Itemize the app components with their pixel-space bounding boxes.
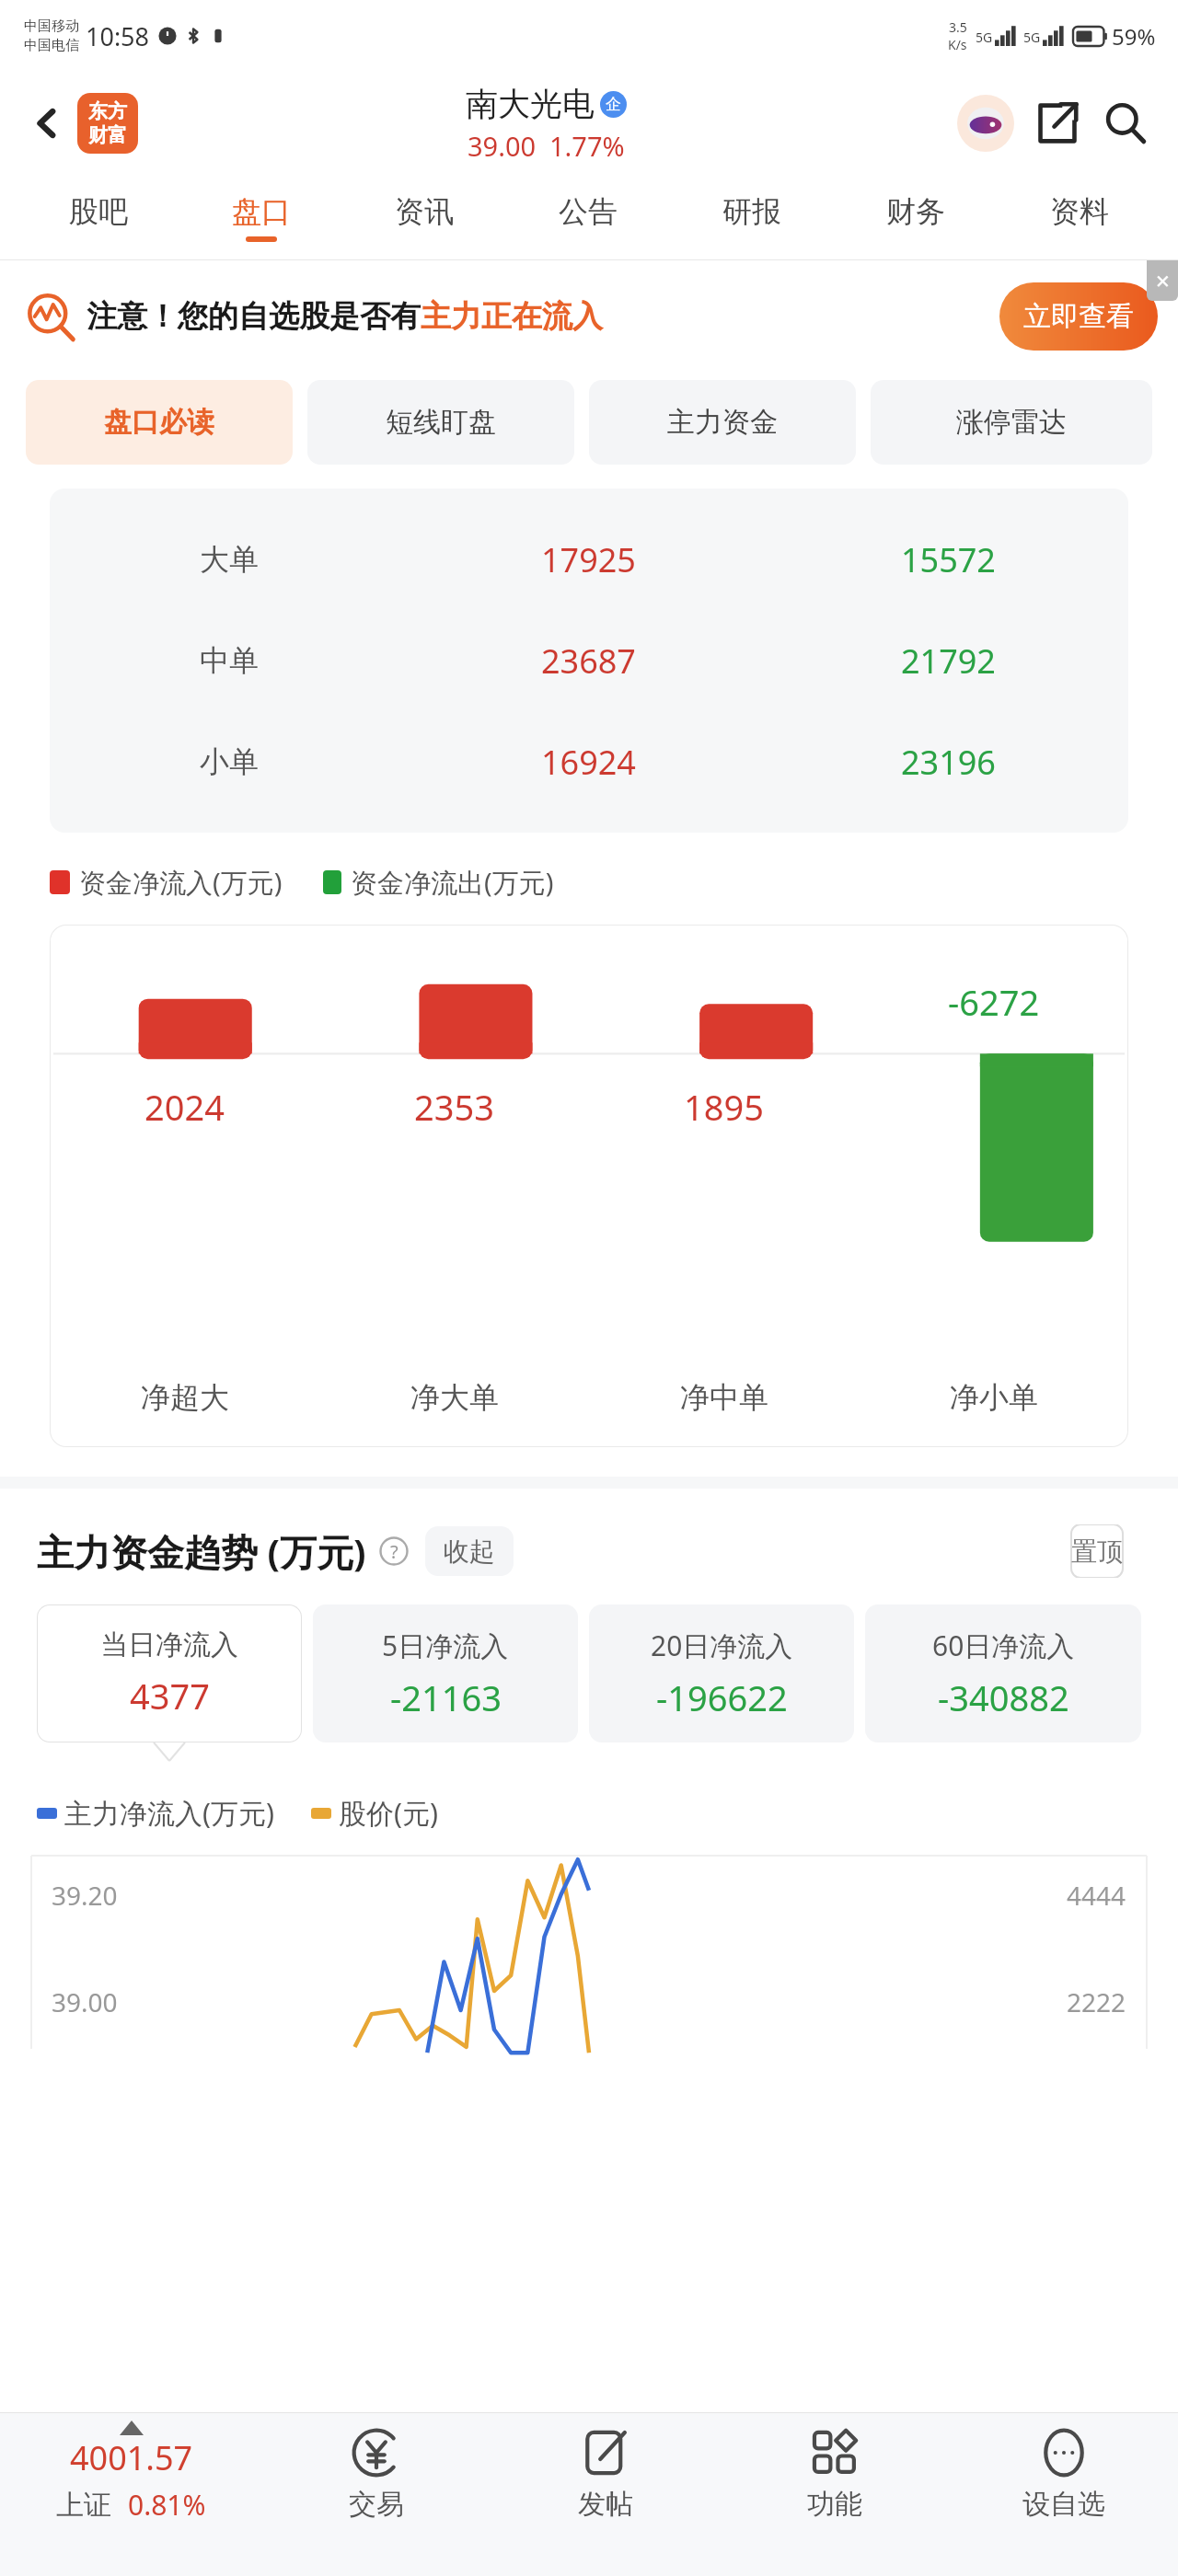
staticText: 资金净流入(万元) bbox=[79, 864, 283, 901]
button[interactable]: 东方财富 bbox=[77, 93, 138, 154]
staticText: 盘口必读 bbox=[104, 405, 214, 440]
staticText: 资金净流出(万元) bbox=[351, 864, 554, 901]
staticText: 20日净流入 bbox=[651, 1627, 793, 1664]
button[interactable]: 盘口必读 bbox=[26, 380, 293, 465]
button[interactable]: Back bbox=[24, 100, 70, 146]
staticText: 60日净流入 bbox=[932, 1627, 1075, 1664]
button[interactable]: 公告 bbox=[506, 175, 670, 259]
staticText: 置顶 bbox=[1071, 1535, 1123, 1568]
staticText: 大单 bbox=[200, 541, 259, 578]
staticText: 南大光电 bbox=[466, 84, 595, 124]
staticText: 2353 bbox=[414, 1083, 494, 1131]
staticText: K/s bbox=[948, 36, 967, 53]
staticText: 资料 bbox=[1050, 193, 1109, 230]
staticText: 股价(元) bbox=[339, 1794, 438, 1832]
staticText: -6272 bbox=[948, 978, 1040, 1026]
staticText: 资讯 bbox=[395, 193, 454, 230]
staticText: ? bbox=[390, 1539, 398, 1564]
button[interactable]: 研报 bbox=[670, 175, 834, 259]
button[interactable]: Close bbox=[1147, 260, 1178, 301]
button[interactable]: 发帖 bbox=[491, 2413, 720, 2576]
staticText: 净大单 bbox=[410, 1379, 499, 1416]
staticText: 39.00 bbox=[468, 128, 537, 164]
staticText: 1895 bbox=[684, 1083, 764, 1131]
staticText: 上证 bbox=[56, 2488, 111, 2523]
staticText: 立即查看 bbox=[1023, 299, 1134, 334]
button[interactable]: 置顶 bbox=[1053, 1524, 1141, 1578]
staticText: 5G bbox=[976, 29, 993, 46]
staticText: 企 bbox=[606, 95, 621, 114]
staticText: 短线盯盘 bbox=[386, 405, 496, 440]
staticText: -21163 bbox=[390, 1673, 502, 1721]
staticText: 涨停雷达 bbox=[956, 405, 1067, 440]
staticText: 主力正在流入 bbox=[421, 297, 603, 336]
staticText: 主力净流入(万元) bbox=[64, 1794, 274, 1832]
staticText: 10:58 bbox=[86, 19, 150, 53]
staticText: 1.77% bbox=[549, 128, 625, 164]
staticText: -340882 bbox=[938, 1673, 1069, 1721]
staticText: 净中单 bbox=[680, 1379, 768, 1416]
button[interactable]: 注意！您的自选股是否有 bbox=[26, 260, 1158, 373]
staticText: 21792 bbox=[901, 638, 996, 684]
staticText: 发帖 bbox=[578, 2487, 633, 2522]
button[interactable]: 立即查看 bbox=[999, 282, 1158, 351]
staticText: 3.5 bbox=[949, 18, 967, 36]
button[interactable]: 交易 bbox=[262, 2413, 491, 2576]
button[interactable]: Help bbox=[377, 1535, 410, 1568]
staticText: 小单 bbox=[200, 743, 259, 780]
staticText: 5G bbox=[1023, 29, 1041, 46]
staticText: 财务 bbox=[886, 193, 945, 230]
staticText: 2024 bbox=[144, 1083, 225, 1131]
button[interactable]: 4001.57 bbox=[0, 2413, 262, 2576]
button[interactable]: 主力资金 bbox=[589, 380, 856, 465]
staticText: 39.00 bbox=[52, 1984, 118, 2019]
staticText: 23687 bbox=[541, 638, 636, 684]
button[interactable]: 财务 bbox=[834, 175, 998, 259]
staticText: 主力资金趋势 (万元) bbox=[37, 1526, 366, 1577]
button[interactable]: Share bbox=[1029, 95, 1086, 152]
staticText: 东方 bbox=[88, 99, 127, 123]
staticText: 交易 bbox=[349, 2487, 404, 2522]
staticText: 23196 bbox=[901, 740, 996, 785]
staticText: 中单 bbox=[200, 642, 259, 679]
staticText: -196622 bbox=[656, 1673, 788, 1721]
staticText: 功能 bbox=[807, 2487, 862, 2522]
button[interactable]: 盘口 bbox=[179, 175, 342, 259]
staticText: 注意！您的自选股是否有 bbox=[87, 297, 421, 336]
button[interactable]: 5日净流入 bbox=[313, 1604, 578, 1742]
staticText: 研报 bbox=[722, 193, 781, 230]
button[interactable]: 收起 bbox=[425, 1526, 514, 1576]
staticText: 4001.57 bbox=[70, 2435, 193, 2480]
staticText: 16924 bbox=[541, 740, 636, 785]
button[interactable]: 资讯 bbox=[342, 175, 506, 259]
staticText: 当日净流入 bbox=[100, 1627, 238, 1662]
button[interactable]: 股吧 bbox=[17, 175, 179, 259]
button[interactable]: 60日净流入 bbox=[865, 1604, 1141, 1742]
staticText: 股吧 bbox=[69, 193, 128, 230]
button[interactable]: 20日净流入 bbox=[589, 1604, 854, 1742]
staticText: 财富 bbox=[88, 123, 127, 147]
button[interactable]: 资料 bbox=[998, 175, 1161, 259]
staticText: 4377 bbox=[130, 1672, 210, 1719]
button[interactable]: 功能 bbox=[720, 2413, 949, 2576]
button[interactable]: 涨停雷达 bbox=[871, 380, 1152, 465]
staticText: 净超大 bbox=[141, 1379, 229, 1416]
staticText: 盘口 bbox=[232, 193, 291, 230]
staticText: 39.20 bbox=[52, 1878, 118, 1913]
button[interactable]: 南大光电 bbox=[466, 84, 627, 164]
button[interactable]: 设自选 bbox=[949, 2413, 1178, 2576]
button[interactable]: 当日净流入 bbox=[37, 1604, 302, 1742]
staticText: 主力资金 bbox=[667, 405, 778, 440]
staticText: ✕ bbox=[1155, 270, 1171, 292]
staticText: 中国移动 bbox=[24, 17, 79, 35]
staticText: 净小单 bbox=[950, 1379, 1038, 1416]
button[interactable]: AI助手 bbox=[955, 93, 1016, 154]
button[interactable]: Search bbox=[1097, 95, 1154, 152]
staticText: 收起 bbox=[444, 1535, 495, 1568]
staticText: 设自选 bbox=[1022, 2487, 1105, 2522]
button[interactable]: 短线盯盘 bbox=[307, 380, 574, 465]
staticText: 0.81% bbox=[128, 2486, 206, 2524]
staticText: 17925 bbox=[541, 537, 636, 582]
staticText: 59% bbox=[1112, 21, 1156, 52]
staticText: 2222 bbox=[1067, 1984, 1126, 2019]
